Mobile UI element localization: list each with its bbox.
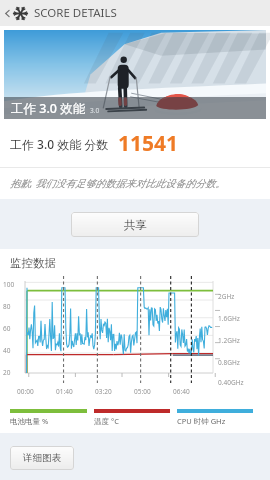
- staticText: 06:40: [173, 387, 190, 396]
- staticText: 温度 °C: [94, 416, 119, 426]
- staticText: 电池电量 %: [10, 416, 49, 426]
- button[interactable]: 详细图表: [10, 446, 74, 470]
- staticText: 监控数据: [10, 256, 56, 270]
- staticText: 03:20: [95, 387, 112, 396]
- button[interactable]: Monitoring chart: [0, 275, 270, 407]
- staticText: 05:00: [134, 387, 151, 396]
- staticText: 100: [3, 280, 15, 289]
- staticText: 20: [3, 368, 11, 377]
- staticText: 60: [3, 324, 11, 333]
- staticText: 0.40GHz: [218, 378, 244, 387]
- button[interactable]: Back: [2, 0, 13, 26]
- staticText: 工作 3.0 效能 分数: [10, 136, 109, 152]
- staticText: 80: [3, 302, 11, 311]
- staticText: 共享: [124, 218, 147, 232]
- staticText: 40: [3, 346, 11, 355]
- staticText: 详细图表: [23, 452, 61, 464]
- staticText: 1.6GHz: [218, 314, 240, 323]
- button[interactable]: 工作 3.0 效能: [4, 30, 266, 119]
- staticText: 11541: [118, 129, 179, 158]
- staticText: 工作 3.0 效能: [11, 100, 86, 117]
- staticText: 01:40: [56, 387, 73, 396]
- staticText: 抱歉, 我们没有足够的数据来对比此设备的分数。: [10, 176, 226, 190]
- staticText: 3.0: [90, 106, 100, 115]
- button[interactable]: 共享: [71, 212, 199, 237]
- staticText: CPU 时钟 GHz: [177, 416, 226, 426]
- staticText: 00:00: [17, 387, 34, 396]
- staticText: 2GHz: [218, 292, 235, 301]
- staticText: 1.2GHz: [218, 336, 240, 345]
- staticText: SCORE DETAILS: [34, 5, 117, 21]
- staticText: 0.8GHz: [218, 358, 240, 367]
